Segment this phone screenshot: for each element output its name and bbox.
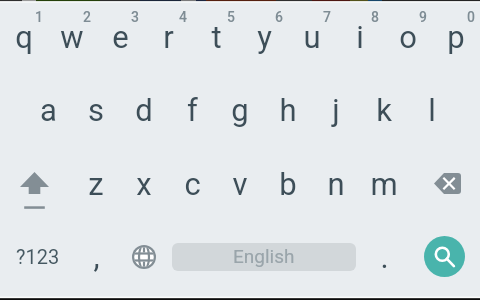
staticText: z bbox=[88, 166, 104, 202]
staticText: g bbox=[231, 92, 249, 128]
button[interactable]: , bbox=[72, 223, 120, 290]
staticText: s bbox=[88, 92, 104, 128]
staticText: 2 bbox=[83, 9, 91, 25]
staticText: , bbox=[93, 238, 100, 274]
button[interactable]: s bbox=[72, 76, 120, 150]
staticText: x bbox=[136, 166, 152, 202]
button[interactable]: Search bbox=[424, 236, 465, 277]
button[interactable]: . bbox=[360, 223, 408, 290]
staticText: . bbox=[380, 239, 389, 275]
button[interactable]: v bbox=[216, 150, 264, 223]
button[interactable]: k bbox=[360, 76, 408, 150]
staticText: n bbox=[327, 166, 345, 202]
button[interactable]: p bbox=[432, 3, 480, 76]
staticText: v bbox=[232, 166, 248, 202]
button[interactable]: e bbox=[96, 3, 144, 76]
staticText: d bbox=[135, 92, 153, 128]
button[interactable]: y bbox=[240, 3, 288, 76]
button[interactable]: f bbox=[168, 76, 216, 150]
staticText: r bbox=[163, 19, 174, 55]
staticText: f bbox=[187, 92, 198, 128]
staticText: c bbox=[184, 166, 201, 202]
staticText: 9 bbox=[419, 9, 427, 25]
staticText: 3 bbox=[131, 9, 139, 25]
button[interactable]: n bbox=[312, 150, 360, 223]
staticText: e bbox=[112, 19, 129, 55]
staticText: o bbox=[399, 19, 417, 55]
staticText: t bbox=[211, 19, 222, 55]
button[interactable]: q bbox=[0, 3, 48, 76]
button[interactable]: r bbox=[144, 3, 192, 76]
staticText: k bbox=[376, 92, 392, 128]
button[interactable]: z bbox=[72, 150, 120, 223]
staticText: j bbox=[332, 92, 340, 128]
button[interactable]: j bbox=[312, 76, 360, 150]
staticText: h bbox=[279, 92, 297, 128]
button[interactable]: h bbox=[264, 76, 312, 150]
staticText: English bbox=[233, 245, 295, 267]
button[interactable]: u bbox=[288, 3, 336, 76]
button[interactable]: ?123 bbox=[0, 223, 72, 290]
button[interactable]: l bbox=[408, 76, 456, 150]
button[interactable]: c bbox=[168, 150, 216, 223]
staticText: y bbox=[257, 19, 272, 55]
staticText: 5 bbox=[227, 9, 235, 25]
staticText: p bbox=[447, 19, 465, 55]
button[interactable]: g bbox=[216, 76, 264, 150]
button[interactable]: a bbox=[24, 76, 72, 150]
staticText: i bbox=[356, 19, 364, 55]
button[interactable]: m bbox=[360, 150, 408, 223]
staticText: q bbox=[15, 19, 33, 55]
button[interactable]: i bbox=[336, 3, 384, 76]
staticText: 1 bbox=[35, 9, 43, 25]
staticText: w bbox=[60, 19, 84, 55]
staticText: 0 bbox=[467, 9, 475, 25]
button[interactable]: Change keyboard language bbox=[120, 223, 168, 290]
button[interactable]: English bbox=[172, 243, 356, 271]
button[interactable]: d bbox=[120, 76, 168, 150]
button[interactable]: o bbox=[384, 3, 432, 76]
button[interactable]: x bbox=[120, 150, 168, 223]
staticText: 8 bbox=[371, 9, 379, 25]
button[interactable]: w bbox=[48, 3, 96, 76]
staticText: m bbox=[370, 166, 398, 202]
staticText: l bbox=[428, 92, 436, 128]
staticText: 4 bbox=[179, 9, 187, 25]
staticText: a bbox=[40, 92, 57, 128]
staticText: b bbox=[279, 166, 297, 202]
staticText: 7 bbox=[323, 9, 331, 25]
button[interactable]: Shift bbox=[0, 150, 72, 223]
staticText: ?123 bbox=[16, 245, 60, 268]
button[interactable]: t bbox=[192, 3, 240, 76]
button[interactable]: b bbox=[264, 150, 312, 223]
button[interactable]: Backspace bbox=[408, 150, 480, 223]
staticText: u bbox=[303, 19, 321, 55]
staticText: 6 bbox=[275, 9, 283, 25]
